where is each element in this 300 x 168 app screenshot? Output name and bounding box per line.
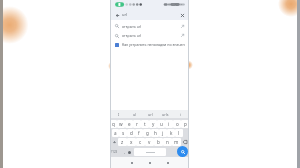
staticText: , bbox=[124, 149, 126, 155]
button[interactable]: d bbox=[127, 129, 135, 137]
staticText: открыть url bbox=[122, 33, 142, 38]
staticText: p bbox=[184, 121, 187, 127]
staticText: v bbox=[148, 139, 151, 145]
button[interactable]: a bbox=[112, 129, 119, 137]
button[interactable]: Suggestion url bbox=[143, 110, 158, 118]
button[interactable]: w bbox=[117, 120, 125, 128]
button[interactable]: Back bbox=[114, 12, 120, 18]
button[interactable]: h bbox=[151, 129, 159, 137]
button[interactable]: t bbox=[141, 120, 149, 128]
button[interactable]: g bbox=[143, 129, 151, 137]
button[interactable]: Back bbox=[128, 159, 136, 167]
staticText: q bbox=[112, 121, 115, 127]
button[interactable]: e bbox=[125, 120, 133, 128]
staticText: u bbox=[160, 121, 163, 127]
staticText: n bbox=[166, 139, 169, 145]
button[interactable]: u bbox=[157, 120, 165, 128]
staticText: ?123 bbox=[111, 150, 118, 154]
staticText: f bbox=[138, 130, 140, 136]
button[interactable]: Symbols bbox=[110, 148, 118, 156]
button[interactable]: r bbox=[133, 120, 141, 128]
staticText: открыть url bbox=[122, 24, 142, 29]
staticText: a bbox=[114, 130, 117, 136]
staticText: w bbox=[119, 121, 123, 127]
staticText: s bbox=[122, 130, 125, 136]
button[interactable]: открыть url bbox=[110, 21, 189, 31]
button[interactable]: Home bbox=[146, 159, 154, 167]
button[interactable]: Как устранить неполадки по значению при bbox=[110, 40, 189, 49]
staticText: url bbox=[148, 112, 153, 117]
button[interactable]: Insert suggestion bbox=[180, 24, 185, 29]
staticText: b bbox=[157, 139, 160, 145]
staticText: m bbox=[174, 139, 179, 145]
staticText: i bbox=[180, 112, 181, 117]
button[interactable]: q bbox=[110, 120, 117, 128]
staticText: g bbox=[146, 130, 149, 136]
button[interactable]: Suggestion I bbox=[111, 110, 127, 118]
button[interactable]: x bbox=[127, 138, 136, 146]
button[interactable]: l bbox=[175, 129, 183, 137]
staticText: z bbox=[121, 139, 124, 145]
button[interactable]: открыть url bbox=[110, 31, 189, 40]
staticText: x bbox=[130, 139, 133, 145]
button[interactable]: k bbox=[167, 129, 175, 137]
button[interactable]: b bbox=[154, 138, 163, 146]
staticText: j bbox=[162, 130, 164, 136]
button[interactable]: Emoji bbox=[127, 148, 132, 156]
staticText: o bbox=[176, 121, 179, 127]
button[interactable]: n bbox=[163, 138, 172, 146]
staticText: e bbox=[128, 121, 131, 127]
button[interactable]: Insert suggestion bbox=[180, 33, 185, 38]
button[interactable]: y bbox=[149, 120, 157, 128]
staticText: c bbox=[139, 139, 142, 145]
staticText: h bbox=[154, 130, 157, 136]
staticText: d bbox=[130, 130, 133, 136]
staticText: y bbox=[152, 121, 155, 127]
button[interactable]: v bbox=[145, 138, 154, 146]
button[interactable]: Comma bbox=[122, 148, 127, 156]
staticText: k bbox=[170, 130, 173, 136]
button[interactable]: o bbox=[173, 120, 181, 128]
button[interactable]: c bbox=[136, 138, 145, 146]
staticText: url bbox=[122, 12, 128, 17]
staticText: Как устранить неполадки по значению при bbox=[122, 42, 185, 47]
staticText: urls bbox=[162, 112, 169, 117]
button[interactable]: s bbox=[119, 129, 127, 137]
button[interactable]: Recents bbox=[164, 159, 172, 167]
staticText: t bbox=[144, 121, 146, 127]
staticText: r bbox=[136, 121, 138, 127]
button[interactable]: p bbox=[181, 120, 189, 128]
button[interactable]: Shift bbox=[110, 138, 118, 146]
staticText: l bbox=[178, 130, 180, 136]
button[interactable]: Clear query bbox=[179, 12, 185, 18]
button[interactable]: m bbox=[172, 138, 181, 146]
button[interactable]: i bbox=[165, 120, 173, 128]
button[interactable]: Backspace bbox=[181, 138, 189, 146]
button[interactable]: f bbox=[135, 129, 143, 137]
button[interactable]: Suggestion i bbox=[173, 110, 188, 118]
button[interactable]: j bbox=[159, 129, 167, 137]
button[interactable]: Suggestion ul bbox=[127, 110, 143, 118]
button[interactable]: Search bbox=[177, 146, 188, 157]
staticText: ul bbox=[133, 112, 137, 117]
button[interactable]: z bbox=[118, 138, 127, 146]
staticText: I bbox=[118, 112, 120, 117]
staticText: i bbox=[168, 121, 170, 127]
button[interactable]: Space bbox=[134, 148, 166, 156]
button[interactable]: Suggestion urls bbox=[158, 110, 173, 118]
